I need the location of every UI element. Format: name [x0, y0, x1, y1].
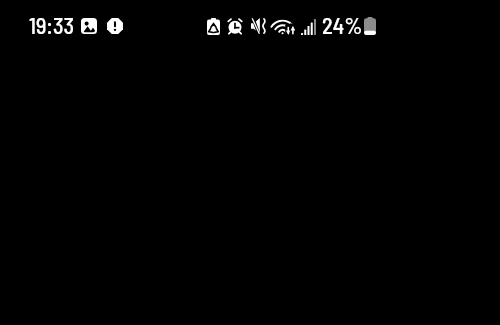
staticText: 24%: [322, 11, 363, 38]
staticText: 19:33: [29, 11, 75, 38]
